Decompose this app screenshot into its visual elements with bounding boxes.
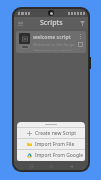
button[interactable]: Back: [68, 163, 74, 169]
button[interactable]: Filter: [78, 19, 86, 27]
button[interactable]: Home: [48, 163, 54, 169]
button[interactable]: welcome script: [16, 31, 86, 53]
staticText: Telegram you and any extra: [33, 48, 76, 51]
button[interactable]: Save script: [77, 41, 84, 48]
button[interactable]: Create new Script: [17, 128, 85, 138]
staticText: Welcome to this Script: [33, 42, 75, 47]
button[interactable]: Import From File Manager: [17, 139, 85, 149]
button[interactable]: Recent apps: [28, 163, 34, 169]
staticText: Scripts: [40, 18, 63, 28]
staticText: Create new Script: [35, 130, 77, 137]
button[interactable]: More options: [77, 33, 84, 40]
button[interactable]: Import From Google Drive: [17, 150, 85, 160]
button[interactable]: Open navigation menu: [16, 19, 24, 27]
staticText: Import From File Manager: [35, 141, 85, 148]
staticText: welcome script: [33, 34, 71, 41]
staticText: Import From Google Drive: [35, 152, 85, 159]
